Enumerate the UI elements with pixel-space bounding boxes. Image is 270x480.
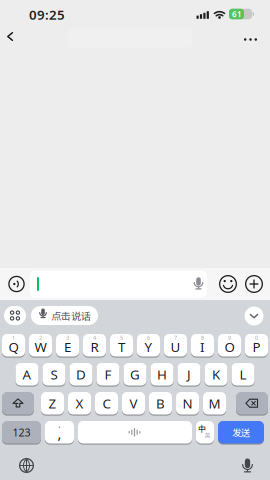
button[interactable]: O [218,333,241,357]
button[interactable]: Q [2,333,25,357]
button[interactable]: Comma [45,420,74,444]
button[interactable]: Delete [236,391,268,415]
staticText: Q [8,338,18,356]
button[interactable]: Space [78,420,192,444]
staticText: I [200,338,205,356]
button[interactable]: E [56,333,79,357]
staticText: Y [144,338,152,356]
staticText: T [118,338,125,356]
button[interactable]: Y [137,333,160,357]
staticText: 点击说话 [51,308,91,323]
staticText: 8 [201,334,204,341]
staticText: R [90,338,98,356]
staticText: 2 [39,334,42,341]
staticText: 发送 [232,425,250,439]
button[interactable]: N [176,391,199,415]
button[interactable]: Dictation [191,276,205,292]
staticText: G [130,365,140,383]
staticText: B [156,394,165,412]
button[interactable]: I [191,333,214,357]
staticText: S [50,365,57,383]
staticText: U [170,338,180,356]
button[interactable]: B [149,391,172,415]
staticText: V [129,394,137,412]
staticText: K [212,365,220,383]
button[interactable]: V [122,391,145,415]
staticText: 7 [174,334,177,341]
button[interactable]: K [204,362,227,386]
staticText: N [182,394,192,412]
button[interactable]: Z [41,391,64,415]
button[interactable]: Shift [2,391,34,415]
staticText: 英 [204,431,210,440]
button[interactable]: Hold to talk [6,274,26,294]
button[interactable]: Dictation [239,456,255,474]
button[interactable]: L [231,362,254,386]
staticText: W [34,338,46,356]
staticText: 4 [93,334,96,341]
button[interactable]: Dismiss keyboard [244,306,263,325]
button[interactable]: Back [0,30,22,44]
button[interactable]: S [42,362,65,386]
staticText: 5 [120,334,123,341]
staticText: 9 [228,334,231,341]
button[interactable]: Keyboard functions [4,306,26,325]
button[interactable]: Tap to talk [31,306,98,325]
staticText: H [157,365,167,383]
button[interactable]: F [96,362,119,386]
staticText: , [57,423,61,443]
button[interactable]: G [123,362,146,386]
staticText: J [187,365,191,383]
staticText: E [64,338,71,356]
staticText: 中 [198,422,206,434]
staticText: Z [48,394,56,412]
button[interactable]: J [177,362,200,386]
staticText: 3 [66,334,69,341]
staticText: M [208,394,220,412]
staticText: 6 [147,334,150,341]
staticText: X [75,394,83,412]
staticText: 123 [12,425,30,439]
button[interactable]: More [239,32,261,46]
button[interactable]: M [203,391,226,415]
button[interactable]: Numbers [2,420,41,444]
button[interactable]: Switch language [196,420,214,444]
staticText: 1 [12,334,15,341]
button[interactable]: Emoji [218,274,238,294]
button[interactable]: U [164,333,187,357]
button[interactable]: Message field [30,270,207,297]
staticText: 61 [232,9,242,19]
staticText: L [239,365,246,383]
staticText: D [76,365,86,383]
button[interactable]: More functions [244,274,264,294]
button[interactable]: A [15,362,38,386]
button[interactable]: Send [218,420,264,444]
staticText: F [104,365,111,383]
button[interactable]: T [110,333,133,357]
button[interactable]: Next keyboard [18,457,34,473]
staticText: O [224,338,234,356]
staticText: P [252,338,260,356]
staticText: A [22,365,31,383]
staticText: 0 [255,334,258,341]
button[interactable]: D [69,362,92,386]
staticText: C [102,394,110,412]
button[interactable]: P [245,333,268,357]
button[interactable]: H [150,362,173,386]
button[interactable]: R [83,333,106,357]
button[interactable]: W [29,333,52,357]
button[interactable]: C [95,391,118,415]
button[interactable]: X [68,391,91,415]
staticText: 09:25 [29,6,65,23]
